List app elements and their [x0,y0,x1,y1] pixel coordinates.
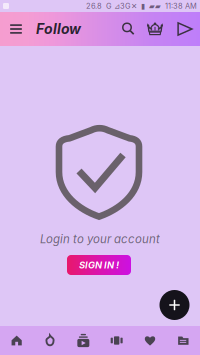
button[interactable]: Menu [4,12,28,46]
button[interactable]: Library [167,326,200,355]
button[interactable]: Add [159,290,189,320]
button[interactable]: SIGN IN ! [67,255,131,275]
button[interactable]: Favourites [133,326,167,355]
button[interactable]: Go live [172,12,198,46]
staticText: 26.8 G ⊿3G✕ ▮ ▰▰ 11:38 AM [86,1,197,10]
button[interactable]: Follow [36,12,112,46]
button[interactable]: Shorts [100,326,133,355]
button[interactable]: Trending [33,326,67,355]
button[interactable]: Premium [142,12,168,46]
staticText: Login to your account [40,232,160,246]
staticText: Follow [36,20,81,37]
button[interactable]: Videos [67,326,100,355]
button[interactable]: Search [116,12,140,46]
staticText: SIGN IN ! [79,259,119,271]
button[interactable]: Home [0,326,33,355]
